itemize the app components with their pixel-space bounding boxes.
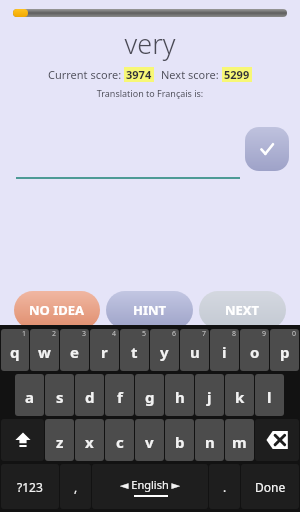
staticText: 4 [112,329,117,339]
button[interactable]: x [75,419,104,461]
button[interactable]: , [60,464,91,509]
button[interactable]: n [195,419,224,461]
staticText: r [101,342,108,362]
button[interactable]: j [195,374,224,416]
staticText: ?123 [17,479,43,495]
staticText: 1 [22,329,27,339]
staticText: u [190,342,200,362]
staticText: 2 [52,329,57,339]
button[interactable]: . [209,464,240,509]
staticText: 5 [142,329,147,339]
staticText: d [85,387,95,407]
button[interactable]: Backspace [255,419,299,461]
staticText: 8 [232,329,237,339]
staticText: Current score: [48,67,124,82]
button[interactable]: k [225,374,254,416]
button[interactable]: m [225,419,254,461]
button[interactable]: f [105,374,134,416]
button[interactable]: 3 [60,329,89,371]
staticText: b [175,432,185,452]
staticText: w [38,342,51,362]
staticText: p [280,342,290,362]
staticText: Next score: [161,67,222,82]
button[interactable]: 9 [240,329,269,371]
staticText: HINT [133,301,167,319]
staticText: NO IDEA [29,301,85,319]
staticText: z [56,432,64,452]
button[interactable]: HINT [106,291,193,329]
button[interactable]: 2 [30,329,59,371]
button[interactable]: Shift [1,419,44,461]
staticText: 6 [172,329,177,339]
staticText: 7 [202,329,207,339]
staticText: l [267,387,272,407]
staticText: 5299 [224,67,250,82]
staticText: q [10,342,20,362]
button[interactable]: s [45,374,74,416]
staticText: NEXT [225,301,260,319]
button[interactable]: 1 [1,329,29,371]
staticText: 0 [292,329,297,339]
staticText: . [223,479,227,495]
staticText: 9 [262,329,267,339]
button[interactable]: l [255,374,284,416]
button[interactable]: NEXT [199,291,286,329]
button[interactable]: 8 [210,329,239,371]
button[interactable]: g [135,374,164,416]
staticText: 3974 [126,67,152,82]
staticText: Done [255,479,286,495]
staticText: o [250,342,260,362]
button[interactable]: 0 [270,329,299,371]
button[interactable]: NO IDEA [14,291,100,329]
button[interactable]: h [165,374,194,416]
staticText: k [235,387,245,407]
staticText: a [25,387,34,407]
button[interactable]: 4 [90,329,119,371]
staticText: , [74,479,78,495]
button[interactable]: ?123 [1,464,59,509]
staticText: very [0,25,300,62]
staticText: 3 [82,329,87,339]
button[interactable]: Space [92,464,208,509]
staticText: y [160,342,169,362]
staticText: s [56,387,64,407]
button[interactable]: c [105,419,134,461]
staticText: x [85,432,94,452]
staticText: n [205,432,215,452]
button[interactable]: d [75,374,104,416]
staticText: c [116,432,124,452]
button[interactable]: v [135,419,164,461]
staticText: j [207,387,212,407]
staticText: i [222,342,227,362]
button[interactable]: Check answer [245,127,289,171]
staticText: ◄ English ► [120,477,181,492]
staticText: m [232,432,247,452]
staticText: f [117,387,123,407]
button[interactable]: 5 [120,329,149,371]
button[interactable]: 7 [180,329,209,371]
button[interactable]: a [15,374,44,416]
button[interactable]: Done [241,464,299,509]
staticText: g [145,387,155,407]
staticText: t [131,342,138,362]
staticText: h [175,387,185,407]
button[interactable]: 6 [150,329,179,371]
staticText: e [70,342,79,362]
staticText: Translation to Français is: [0,87,300,99]
button[interactable]: b [165,419,194,461]
staticText: v [145,432,154,452]
button[interactable]: z [45,419,74,461]
